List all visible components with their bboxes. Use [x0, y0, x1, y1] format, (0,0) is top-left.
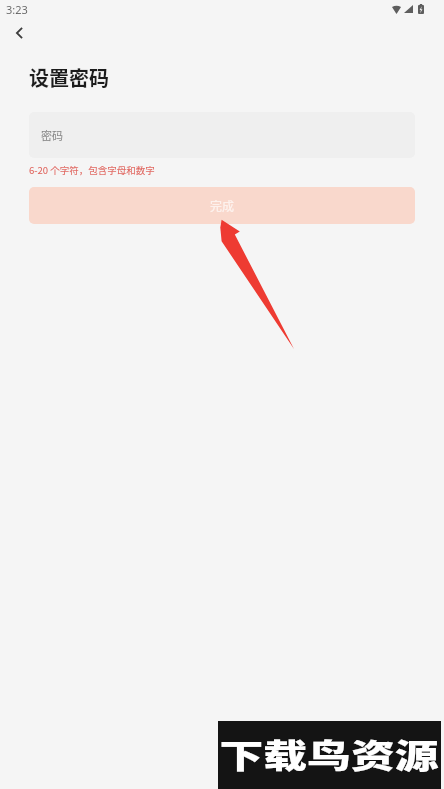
staticText: 3:23: [6, 2, 28, 17]
button[interactable]: 密码: [29, 112, 415, 158]
button[interactable]: Back: [0, 13, 40, 53]
staticText: 密码: [41, 127, 63, 143]
staticText: 完成: [210, 197, 235, 214]
staticText: 6-20 个字符，包含字母和数字: [29, 163, 155, 177]
staticText: 设置密码: [29, 63, 109, 92]
staticText: 下载鸟资源: [219, 729, 439, 777]
button[interactable]: 完成: [29, 187, 415, 224]
